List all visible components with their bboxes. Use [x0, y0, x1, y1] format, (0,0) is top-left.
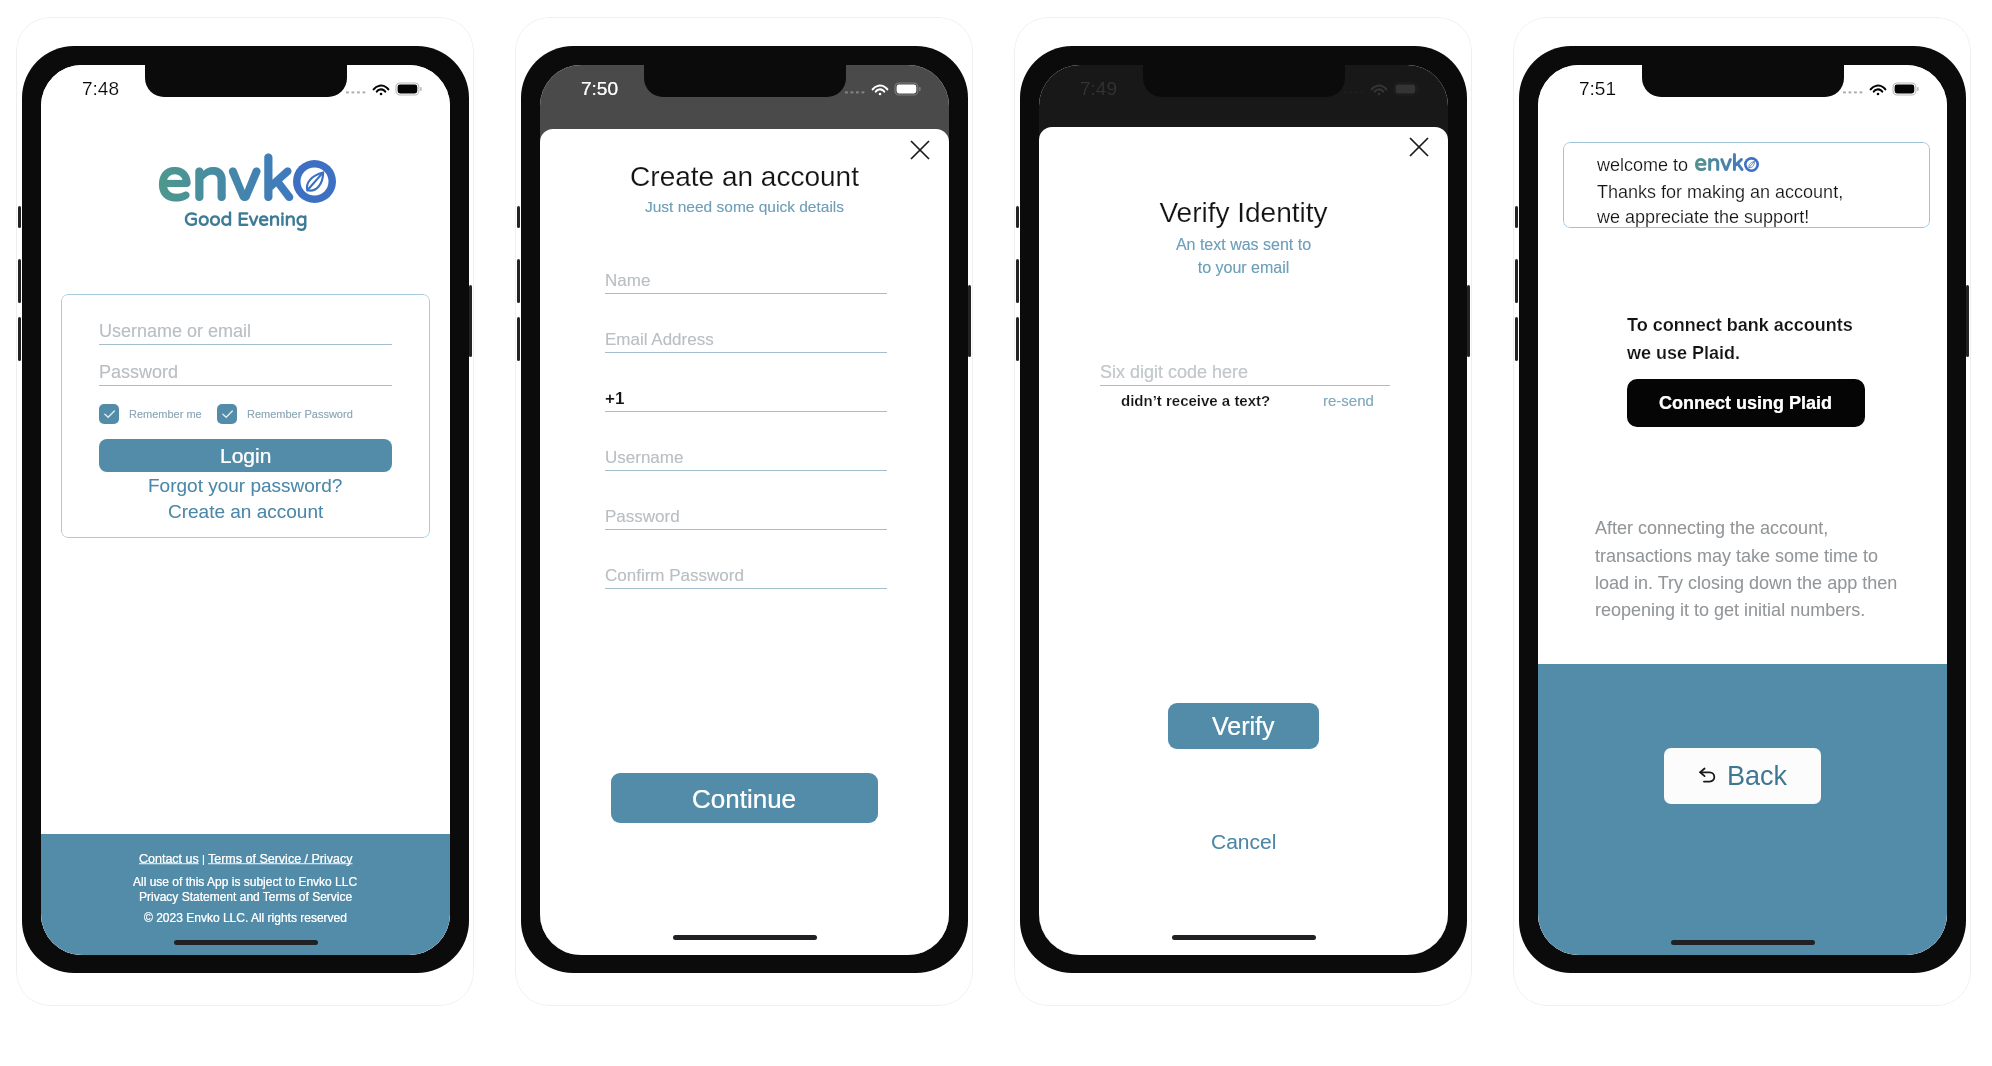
staticText: After connecting the account, transactio… — [1595, 518, 1898, 619]
button[interactable]: Continue — [611, 773, 878, 823]
button[interactable]: Username — [605, 448, 887, 471]
staticText: envk — [1694, 151, 1744, 177]
button[interactable]: Close — [1404, 132, 1434, 162]
staticText: Continue — [692, 784, 797, 813]
staticText: © 2023 Envko LLC. All rights reserved — [144, 911, 347, 924]
staticText: Good Evening — [41, 209, 450, 231]
staticText: welcome to — [1597, 155, 1694, 175]
button[interactable]: +1 — [605, 389, 887, 412]
button[interactable]: Name — [605, 271, 887, 294]
staticText: Connect using Plaid — [1659, 393, 1833, 413]
staticText: All use of this App is subject to Envko … — [133, 875, 358, 888]
staticText: 7:49 — [1080, 78, 1117, 99]
staticText: Confirm Password — [605, 566, 744, 585]
button[interactable]: Remember me — [99, 404, 119, 424]
button[interactable]: Create an account — [99, 501, 392, 522]
staticText: Email Address — [605, 330, 714, 349]
staticText: Login — [220, 444, 272, 467]
staticText: Back — [1727, 761, 1788, 791]
staticText: Password — [605, 507, 680, 526]
button[interactable]: Contact us — [139, 852, 199, 866]
staticText: envk — [156, 145, 293, 218]
staticText: we appreciate the support! — [1597, 207, 1810, 227]
button[interactable]: Password — [99, 362, 392, 386]
staticText: To connect bank accounts — [1627, 315, 1853, 335]
staticText: Create an account — [168, 501, 324, 522]
button[interactable]: Six digit code here — [1100, 362, 1390, 386]
staticText: Create an account — [540, 161, 949, 192]
staticText: Remember Password — [247, 408, 353, 420]
button[interactable]: Username or email — [99, 321, 392, 345]
button[interactable]: Confirm Password — [605, 566, 887, 589]
staticText: Just need some quick details — [540, 198, 949, 215]
staticText: we use Plaid. — [1627, 343, 1741, 363]
staticText: Cancel — [1211, 830, 1277, 853]
button[interactable]: Connect using Plaid — [1627, 379, 1865, 427]
staticText: Verify Identity — [1039, 197, 1448, 228]
staticText: Username or email — [99, 321, 252, 341]
button[interactable]: Close — [905, 135, 935, 165]
staticText: Verify — [1212, 712, 1275, 740]
staticText: Forgot your password? — [148, 475, 343, 496]
button[interactable]: Password — [605, 507, 887, 530]
button[interactable]: Forgot your password? — [99, 475, 392, 496]
button[interactable]: Verify — [1168, 703, 1319, 749]
button[interactable]: Login — [99, 439, 392, 472]
button[interactable]: re-send — [1323, 392, 1374, 409]
staticText: | — [199, 853, 208, 865]
staticText: didn’t receive a text? — [1121, 392, 1271, 409]
staticText: Name — [605, 271, 651, 290]
staticText: 7:48 — [82, 78, 119, 99]
staticText: Six digit code here — [1100, 362, 1249, 382]
button[interactable]: Email Address — [605, 330, 887, 353]
staticText: Privacy Statement and Terms of Service — [139, 890, 353, 903]
button[interactable]: Terms of Service / Privacy — [208, 852, 353, 866]
button[interactable]: Remember Password — [217, 404, 353, 424]
staticText: 7:51 — [1579, 78, 1616, 99]
button[interactable]: Remember Password — [217, 404, 237, 424]
staticText: An text was sent to to your email — [1039, 236, 1448, 276]
staticText: Remember me — [129, 408, 202, 420]
button[interactable]: Remember me — [99, 404, 202, 424]
staticText: Thanks for making an account, — [1597, 182, 1844, 202]
staticText: 7:50 — [581, 78, 618, 99]
staticText: +1 — [605, 389, 625, 408]
staticText: Password — [99, 362, 179, 382]
staticText: Username — [605, 448, 684, 467]
button[interactable]: Cancel — [1039, 830, 1448, 853]
button[interactable]: Back — [1664, 748, 1821, 804]
